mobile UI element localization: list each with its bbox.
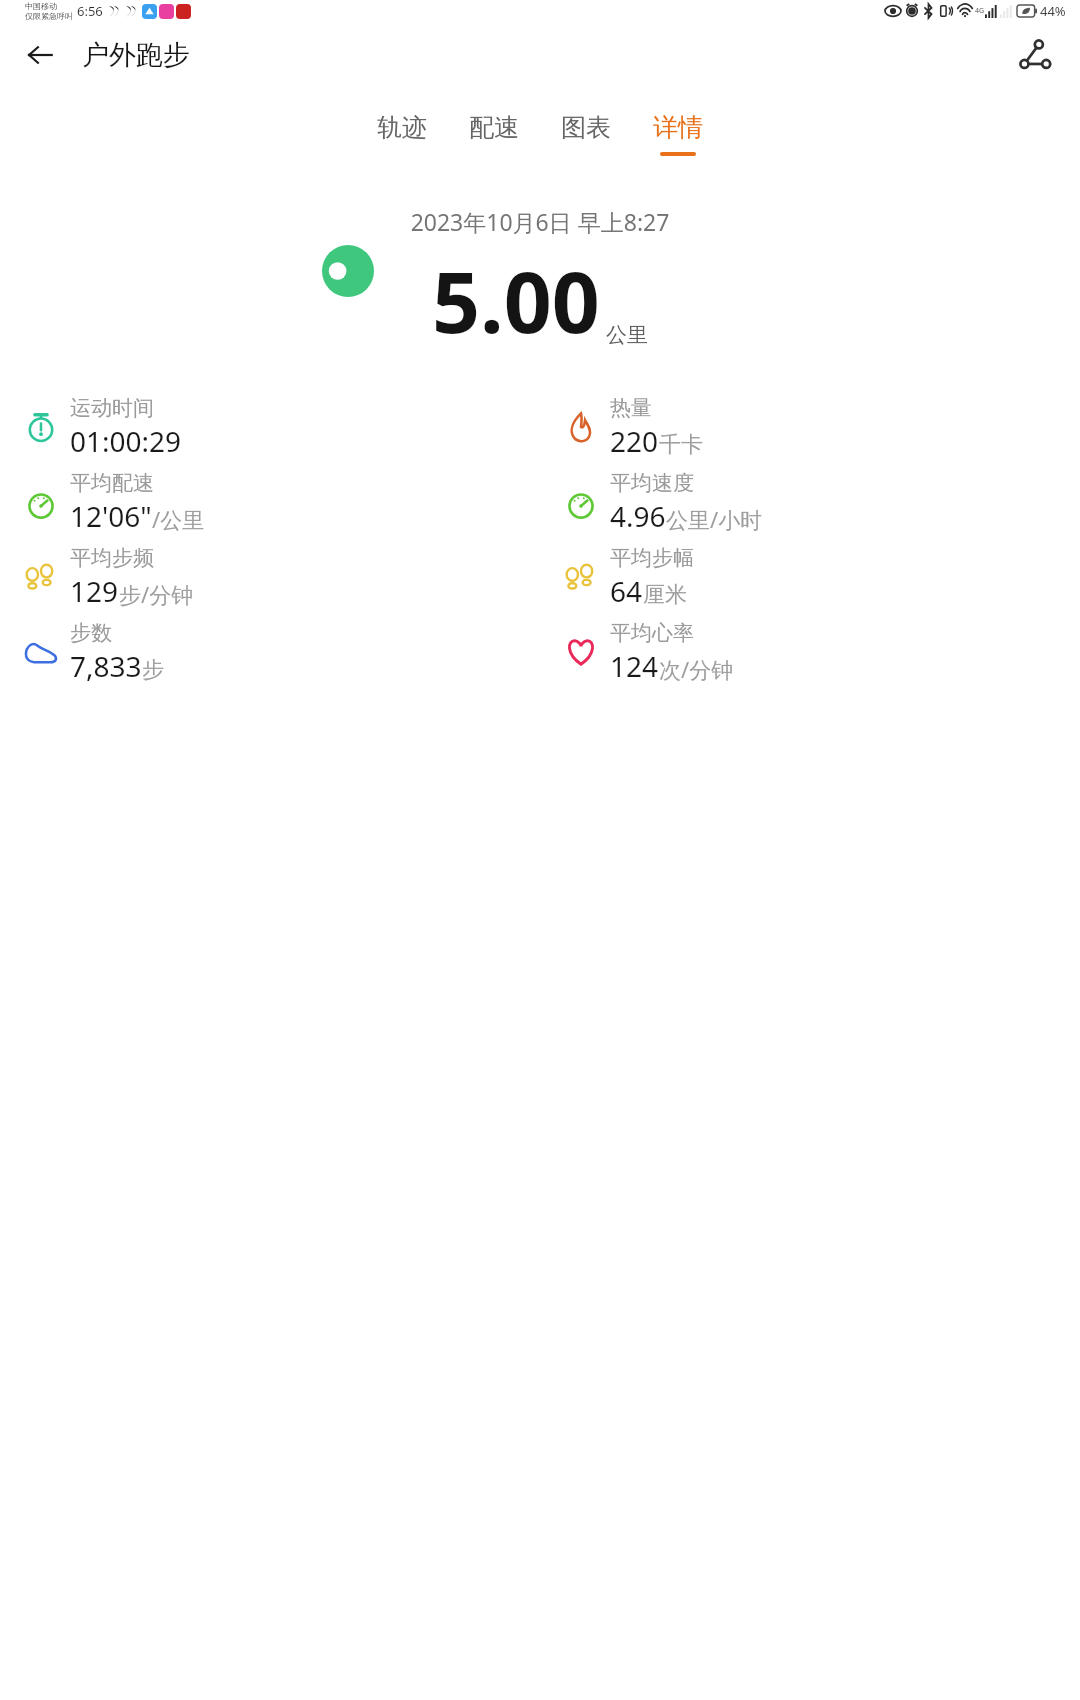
staticText: 2023年10月6日 早上8:27: [0, 206, 1080, 237]
button[interactable]: 平均配速: [0, 468, 540, 536]
staticText: 平均配速: [70, 470, 154, 496]
staticText: 平均心率: [610, 620, 694, 646]
staticText: 详情: [653, 112, 703, 143]
staticText: 64: [610, 572, 643, 610]
button[interactable]: 详情: [649, 108, 707, 160]
staticText: 公里: [606, 322, 648, 348]
staticText: 4G: [975, 6, 985, 16]
staticText: 千卡: [659, 431, 703, 459]
button[interactable]: 平均步频: [0, 543, 540, 611]
staticText: 中国移动: [25, 1, 57, 11]
staticText: 01:00:29: [70, 422, 182, 460]
staticText: 户外跑步: [82, 38, 190, 72]
staticText: 12'06": [70, 497, 152, 535]
button[interactable]: 配速: [465, 108, 523, 160]
staticText: 步数: [70, 620, 112, 646]
staticText: 配速: [469, 112, 519, 143]
staticText: 次/分钟: [659, 654, 734, 684]
staticText: 步: [142, 656, 164, 684]
button[interactable]: 图表: [557, 108, 615, 160]
staticText: 5.00: [432, 243, 600, 357]
staticText: 厘米: [643, 581, 687, 609]
staticText: 步/分钟: [119, 579, 194, 609]
button[interactable]: 轨迹: [373, 108, 431, 160]
staticText: 44%: [1040, 2, 1066, 20]
button[interactable]: Back: [14, 29, 66, 81]
button[interactable]: 平均步幅: [540, 543, 1080, 611]
staticText: 129: [70, 572, 119, 610]
staticText: /公里: [152, 504, 205, 534]
staticText: 热量: [610, 395, 652, 421]
staticText: 6:56: [77, 2, 103, 20]
staticText: 7,833: [70, 647, 142, 685]
staticText: 仅限紧急呼叫: [25, 11, 73, 21]
staticText: 平均步幅: [610, 545, 694, 571]
button[interactable]: Assistant: [322, 245, 374, 297]
button[interactable]: 平均心率: [540, 618, 1080, 686]
staticText: 运动时间: [70, 395, 154, 421]
staticText: 公里/小时: [666, 504, 763, 534]
staticText: 124: [610, 647, 659, 685]
button[interactable]: 平均速度: [540, 468, 1080, 536]
staticText: 图表: [561, 112, 611, 143]
staticText: 4.96: [610, 497, 666, 535]
staticText: 轨迹: [377, 112, 427, 143]
button[interactable]: 热量: [540, 393, 1080, 461]
button[interactable]: 运动时间: [0, 393, 540, 461]
staticText: 220: [610, 422, 659, 460]
button[interactable]: 步数: [0, 618, 540, 686]
staticText: 平均速度: [610, 470, 694, 496]
button[interactable]: Share: [1008, 28, 1062, 82]
staticText: 平均步频: [70, 545, 154, 571]
